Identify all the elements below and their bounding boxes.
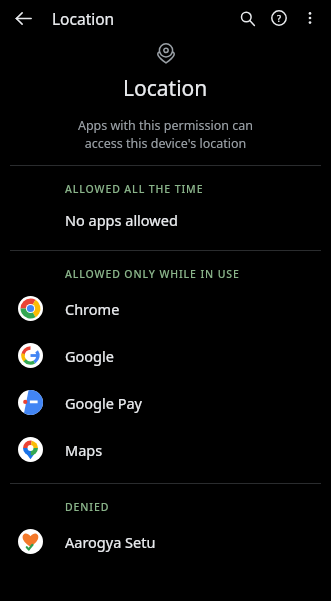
staticText: Maps [65, 440, 103, 460]
staticText: Chrome [65, 299, 120, 319]
button[interactable]: Google [0, 332, 331, 379]
staticText: DENIED [65, 500, 110, 514]
staticText: Google [65, 346, 114, 366]
staticText: Location [123, 74, 208, 103]
button[interactable]: Chrome [0, 285, 331, 332]
button[interactable]: No apps allowed [0, 200, 331, 240]
button[interactable]: Help [263, 2, 295, 34]
staticText: Aarogya Setu [65, 532, 156, 552]
staticText: Apps with this permission can access thi… [30, 117, 301, 152]
button[interactable]: Aarogya Setu [0, 518, 331, 565]
staticText: ? [277, 12, 282, 24]
staticText: No apps allowed [65, 210, 178, 230]
button[interactable]: Google Pay [0, 379, 331, 426]
button[interactable]: Back [8, 3, 38, 33]
staticText: Google Pay [65, 393, 143, 413]
staticText: Location [52, 8, 115, 29]
staticText: ALLOWED ALL THE TIME [65, 182, 204, 196]
button[interactable]: Search [231, 2, 263, 34]
button[interactable]: Maps [0, 426, 331, 473]
button[interactable]: More options [295, 3, 325, 33]
staticText: ALLOWED ONLY WHILE IN USE [65, 267, 240, 281]
